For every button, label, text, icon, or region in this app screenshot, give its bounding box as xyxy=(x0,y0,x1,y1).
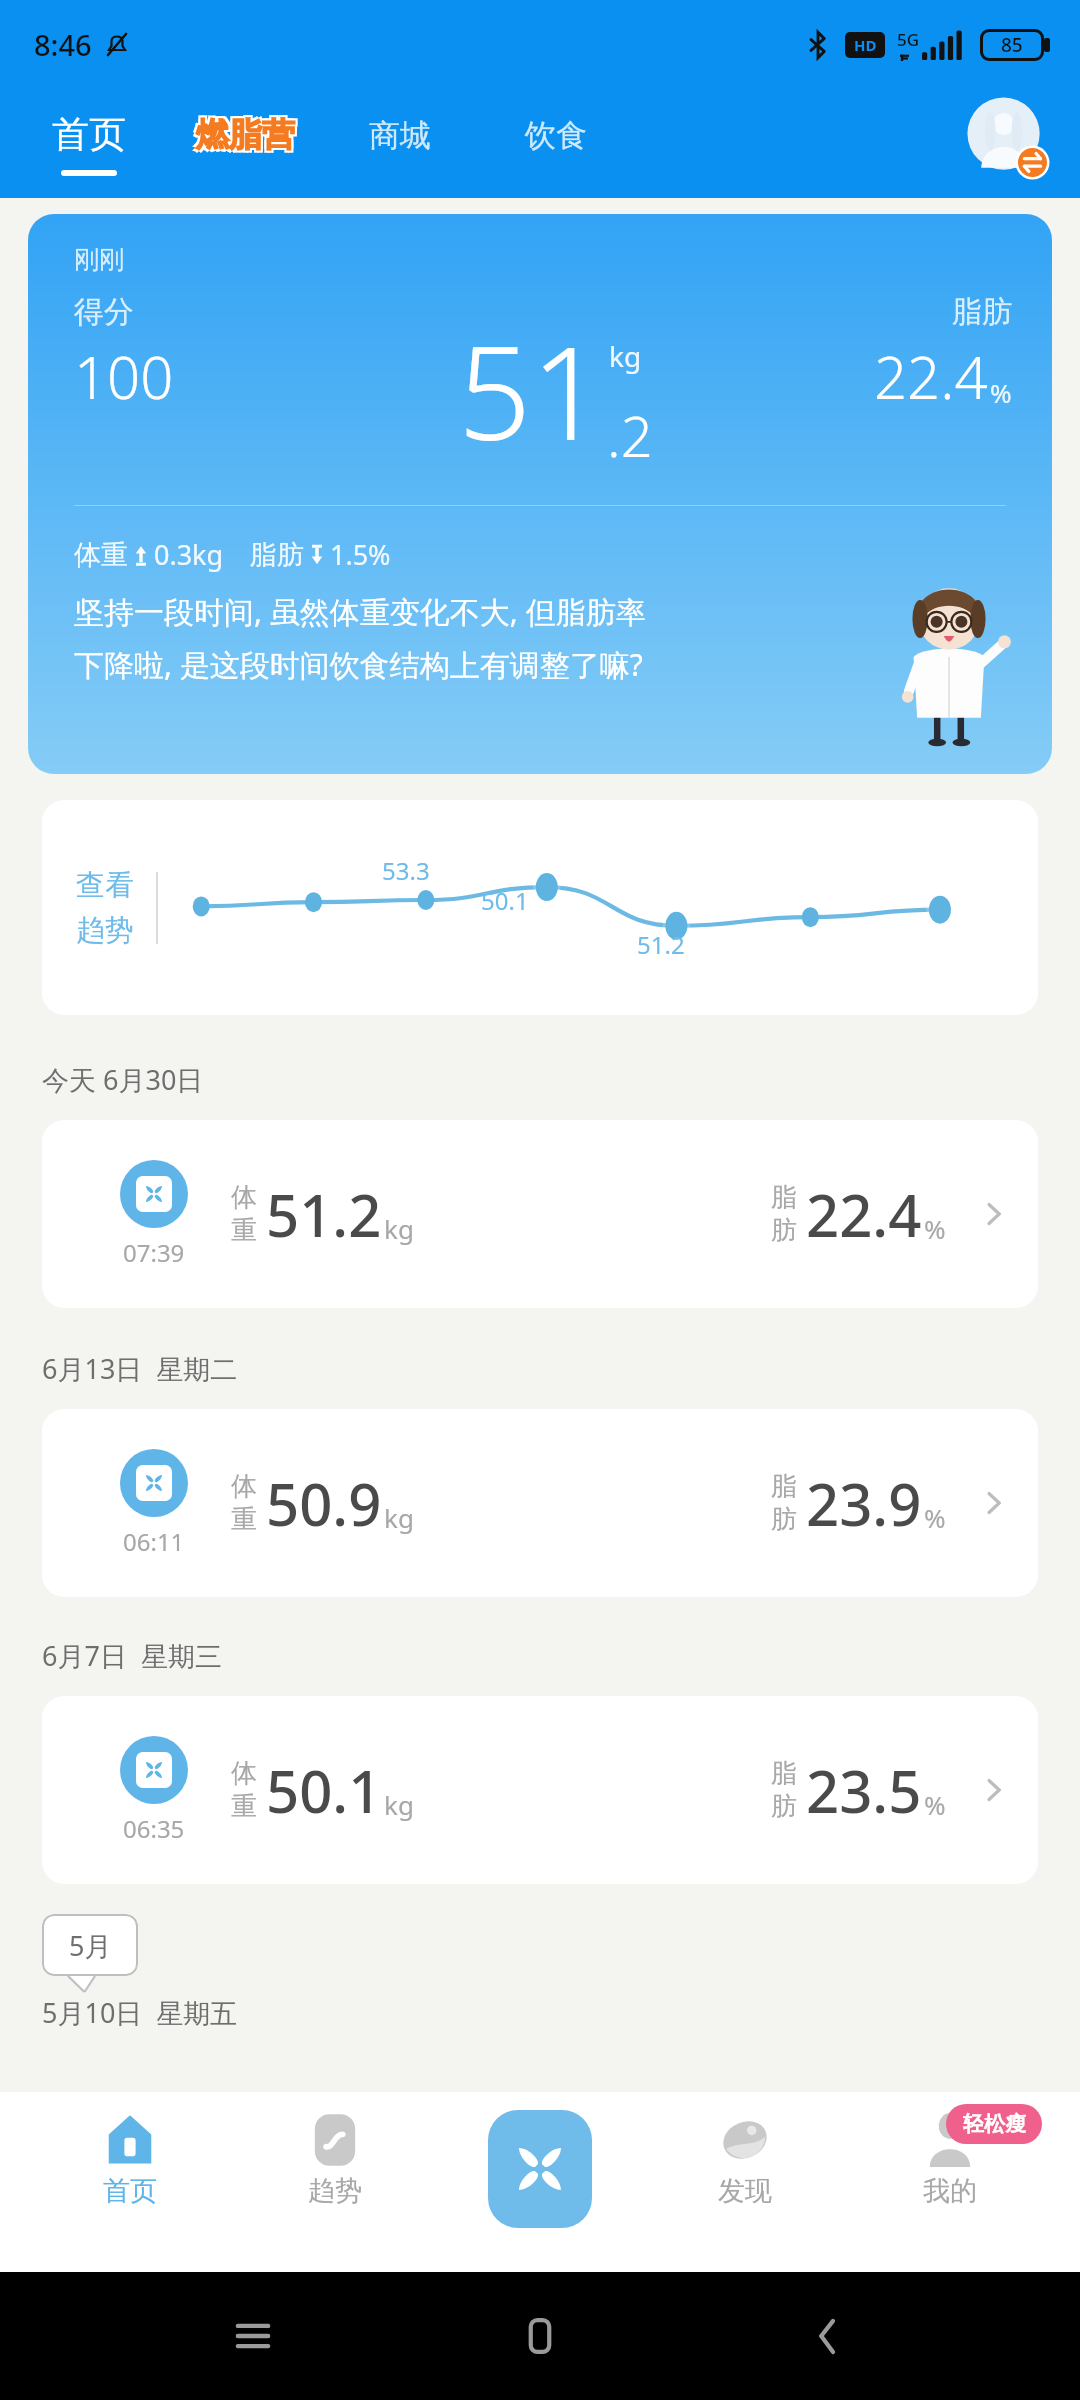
staticText: 100 xyxy=(74,337,174,416)
button[interactable]: 查看 xyxy=(42,800,1038,1015)
staticText: 脂 xyxy=(771,1181,797,1214)
staticText: 轻松瘦 xyxy=(963,2111,1026,2137)
staticText: 6月7日 星期三 xyxy=(42,1637,222,1674)
staticText: 8:46 xyxy=(34,25,92,64)
staticText: 首页 xyxy=(103,2174,157,2208)
staticText: 发现 xyxy=(718,2174,772,2208)
staticText: 燃脂营 xyxy=(196,114,295,156)
staticText: 51 xyxy=(458,303,605,473)
staticText: 脂肪 xyxy=(952,293,1012,331)
staticText: 5G xyxy=(897,28,920,51)
staticText: 查看 xyxy=(76,867,134,904)
staticText: 我的 xyxy=(923,2174,977,2208)
button[interactable]: 刚刚 xyxy=(28,214,1052,774)
button[interactable]: 上秤 xyxy=(488,2110,592,2228)
staticText: 重 xyxy=(231,1214,257,1247)
staticText: 燃脂营 xyxy=(194,116,293,158)
staticText: 5月 xyxy=(69,1927,112,1964)
staticText: 燃脂营 xyxy=(198,116,297,158)
staticText: 体重 xyxy=(74,538,128,572)
button[interactable]: 轻松瘦 xyxy=(875,2106,1025,2214)
staticText: 下降啦, 是这段时间饮食结构上有调整了嘛? xyxy=(74,644,643,685)
staticText: 饮食 xyxy=(525,116,587,155)
button[interactable]: 饮食 xyxy=(519,118,593,169)
staticText: 今天 6月30日 xyxy=(42,1061,204,1098)
button[interactable]: 07:39 xyxy=(42,1120,1038,1308)
staticText: 燃脂营 xyxy=(194,112,293,154)
staticText: 85 xyxy=(1001,32,1023,58)
button[interactable]: 燃脂营 xyxy=(190,114,301,172)
button[interactable]: Back xyxy=(793,2301,863,2371)
staticText: 肪 xyxy=(771,1790,797,1823)
staticText: kg xyxy=(384,1500,414,1535)
staticText: 23.9 xyxy=(806,1464,922,1543)
staticText: .2 xyxy=(607,397,653,473)
staticText: 脂肪 xyxy=(250,538,304,572)
button[interactable]: 06:11 xyxy=(42,1409,1038,1597)
staticText: 22.4 xyxy=(806,1175,922,1254)
staticText: kg xyxy=(384,1787,414,1822)
staticText: 5月10日 星期五 xyxy=(42,1994,238,2031)
staticText: % xyxy=(990,375,1012,410)
staticText: 0.3kg xyxy=(154,536,224,573)
staticText: 脂 xyxy=(771,1470,797,1503)
staticText: 22.4 xyxy=(874,337,988,416)
staticText: 得分 xyxy=(74,293,134,331)
staticText: 体 xyxy=(231,1757,257,1790)
staticText: % xyxy=(924,1500,946,1535)
staticText: 50.1 xyxy=(266,1751,382,1830)
staticText: 体 xyxy=(231,1181,257,1214)
staticText: 上秤 xyxy=(513,2162,567,2196)
staticText: 趋势 xyxy=(76,912,134,949)
staticText: 51.2 xyxy=(637,928,685,961)
staticText: 53.3 xyxy=(382,854,430,887)
button[interactable]: 上秤 xyxy=(465,2106,615,2196)
staticText: 体 xyxy=(231,1470,257,1503)
staticText: 刚刚 xyxy=(74,244,124,275)
staticText: 23.5 xyxy=(806,1751,922,1830)
staticText: 50.1 xyxy=(481,884,529,917)
staticText: 51.2 xyxy=(266,1175,382,1254)
staticText: 商城 xyxy=(369,116,431,155)
staticText: HD xyxy=(854,35,877,55)
button[interactable]: 趋势 xyxy=(260,2106,410,2214)
button[interactable]: 首页 xyxy=(48,111,130,176)
staticText: % xyxy=(924,1787,946,1822)
staticText: 肪 xyxy=(771,1214,797,1247)
button[interactable]: 首页 xyxy=(55,2106,205,2214)
staticText: 07:39 xyxy=(123,1236,185,1269)
staticText: kg xyxy=(384,1211,414,1246)
button[interactable]: Recents xyxy=(218,2301,288,2371)
staticText: 重 xyxy=(231,1503,257,1536)
staticText: 肪 xyxy=(771,1503,797,1536)
staticText: 坚持一段时间, 虽然体重变化不大, 但脂肪率 xyxy=(74,591,646,632)
staticText: % xyxy=(924,1211,946,1246)
staticText: 06:35 xyxy=(123,1812,185,1845)
button[interactable]: 商城 xyxy=(363,118,437,169)
button[interactable]: 发现 xyxy=(670,2106,820,2214)
staticText: 首页 xyxy=(52,111,126,158)
button[interactable]: 5月 xyxy=(42,1914,138,1976)
staticText: 重 xyxy=(231,1790,257,1823)
button[interactable]: Profile xyxy=(964,94,1050,180)
staticText: 燃脂营 xyxy=(198,112,297,154)
staticText: 脂 xyxy=(771,1757,797,1790)
staticText: 趋势 xyxy=(308,2174,362,2208)
staticText: 6月13日 星期二 xyxy=(42,1350,238,1387)
button[interactable]: 06:35 xyxy=(42,1696,1038,1884)
staticText: 1.5% xyxy=(330,536,391,573)
staticText: 50.9 xyxy=(266,1464,382,1543)
staticText: kg xyxy=(609,337,642,375)
staticText: 06:11 xyxy=(123,1525,185,1558)
button[interactable]: Home xyxy=(505,2301,575,2371)
